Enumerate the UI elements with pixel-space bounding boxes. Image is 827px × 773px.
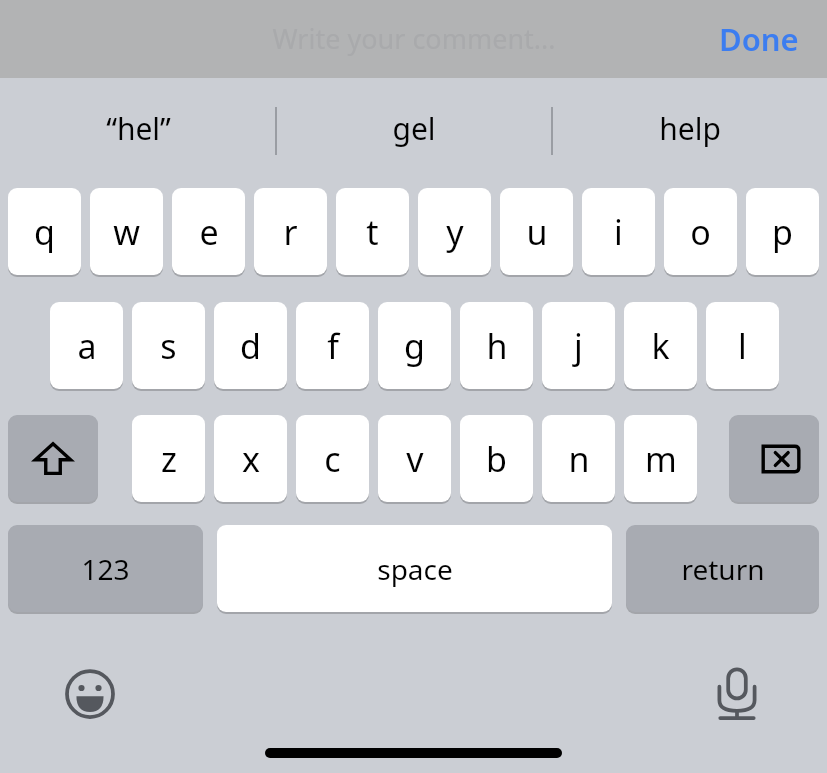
staticText: w [113, 209, 140, 255]
button[interactable]: j [542, 302, 615, 389]
staticText: r [283, 209, 298, 255]
staticText: k [651, 323, 670, 369]
staticText: n [568, 436, 590, 482]
staticText: x [242, 436, 260, 482]
button[interactable]: Done [719, 18, 799, 60]
staticText: space [377, 550, 453, 588]
button[interactable]: “hel” [0, 78, 276, 178]
button[interactable]: a [50, 302, 123, 389]
button[interactable]: w [90, 188, 163, 275]
staticText: i [614, 209, 623, 255]
staticText: gel [392, 108, 436, 149]
button[interactable]: e [172, 188, 245, 275]
staticText: return [681, 550, 765, 588]
button[interactable]: Dictation [703, 660, 771, 728]
button[interactable]: c [296, 415, 369, 502]
staticText: g [404, 323, 425, 369]
button[interactable]: t [336, 188, 409, 275]
button[interactable]: o [664, 188, 737, 275]
button[interactable]: y [418, 188, 491, 275]
staticText: h [486, 323, 508, 369]
button[interactable]: b [460, 415, 533, 502]
staticText: a [77, 323, 97, 369]
staticText: d [240, 323, 261, 369]
button[interactable]: gel [276, 78, 552, 178]
button[interactable]: p [746, 188, 819, 275]
staticText: t [366, 209, 379, 255]
button[interactable]: v [378, 415, 451, 502]
staticText: u [526, 209, 548, 255]
button[interactable]: h [460, 302, 533, 389]
staticText: e [199, 209, 219, 255]
button[interactable]: Shift [8, 415, 98, 502]
staticText: 123 [81, 550, 130, 588]
button[interactable]: Backspace [729, 415, 819, 502]
button[interactable]: k [624, 302, 697, 389]
button[interactable]: i [582, 188, 655, 275]
staticText: z [161, 436, 177, 482]
staticText: m [645, 436, 677, 482]
staticText: c [324, 436, 341, 482]
button[interactable]: 123 [8, 525, 203, 612]
button[interactable]: Emoji keyboard [56, 660, 124, 728]
button[interactable]: return [626, 525, 819, 612]
button[interactable]: q [8, 188, 81, 275]
button[interactable]: z [132, 415, 205, 502]
button[interactable]: n [542, 415, 615, 502]
staticText: f [327, 323, 339, 369]
staticText: “hel” [106, 108, 171, 149]
button[interactable]: x [214, 415, 287, 502]
staticText: o [690, 209, 711, 255]
staticText: v [406, 436, 424, 482]
staticText: y [446, 209, 464, 255]
staticText: j [574, 323, 583, 369]
button[interactable]: m [624, 415, 697, 502]
staticText: b [486, 436, 507, 482]
button[interactable]: d [214, 302, 287, 389]
button[interactable]: l [706, 302, 779, 389]
staticText: p [772, 209, 793, 255]
button[interactable]: f [296, 302, 369, 389]
staticText: q [34, 209, 55, 255]
staticText: help [659, 108, 721, 149]
button[interactable]: u [500, 188, 573, 275]
button[interactable]: s [132, 302, 205, 389]
staticText: Done [719, 18, 799, 60]
button[interactable]: g [378, 302, 451, 389]
button[interactable]: help [552, 78, 827, 178]
staticText: s [160, 323, 177, 369]
staticText: l [738, 323, 747, 369]
button[interactable]: r [254, 188, 327, 275]
button[interactable]: space [217, 525, 612, 612]
